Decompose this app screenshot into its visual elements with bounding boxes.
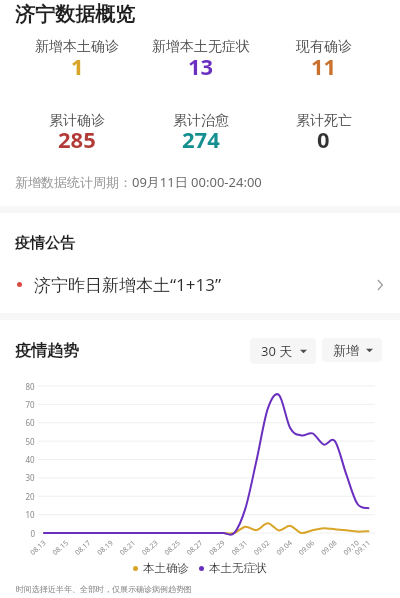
button[interactable]: 累计治愈 [139,112,262,130]
staticText: 时间选择近半年、全部时，仅展示确诊病例趋势图 [16,584,192,594]
staticText: 13 [188,51,214,81]
staticText: 累计确诊 [49,112,105,130]
other: 查看详情 [377,280,383,290]
button[interactable]: 现有确诊 [262,38,385,56]
staticText: 新增本土确诊 [35,38,119,56]
staticText: 新增本土无症状 [152,38,250,56]
staticText: 09月11日 00:00-24:00 [132,173,262,191]
staticText: 累计死亡 [296,112,352,130]
button[interactable]: 累计死亡 [262,112,385,130]
staticText: 274 [182,124,220,154]
staticText: 现有确诊 [296,38,352,56]
button[interactable]: 累计确诊 [15,112,139,130]
staticText: 本土确诊 [143,561,189,575]
button[interactable]: 新增本土无症状 [139,38,262,56]
staticText: 济宁昨日新增本土“1+13” [34,273,222,296]
staticText: 285 [58,124,96,154]
staticText: 30 天 [261,342,293,360]
staticText: 疫情公告 [15,234,75,253]
staticText: 新增 [333,342,359,358]
staticText: 济宁数据概览 [15,2,135,27]
staticText: 累计治愈 [173,112,229,130]
staticText: 1 [71,51,84,81]
button[interactable]: 新增 [322,338,382,362]
staticText: 本土无症状 [209,561,267,575]
button[interactable]: 30 天 [250,338,316,364]
button[interactable]: 新增本土确诊 [15,38,139,56]
button[interactable]: 济宁昨日新增本土“1+13” [0,268,400,301]
staticText: 11 [311,51,337,81]
staticText: 0 [317,124,330,154]
staticText: 疫情趋势 [15,341,79,361]
staticText: 新增数据统计周期： [15,174,132,190]
